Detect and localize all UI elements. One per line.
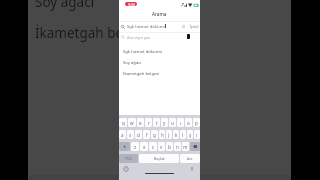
button[interactable]: d xyxy=(135,130,142,139)
button[interactable]: j xyxy=(166,130,172,139)
staticText: k xyxy=(175,132,178,138)
staticText: s xyxy=(129,132,132,138)
staticText: ı xyxy=(180,120,182,126)
staticText: ş xyxy=(189,132,192,138)
staticText: x xyxy=(143,144,146,150)
staticText: e xyxy=(139,120,142,126)
staticText: Ara xyxy=(187,156,193,161)
staticText: t xyxy=(156,120,158,126)
button[interactable]: Clear search xyxy=(182,25,185,28)
staticText: a xyxy=(121,132,124,138)
staticText: u xyxy=(171,120,174,126)
button[interactable]: p xyxy=(193,118,200,127)
staticText: c xyxy=(152,144,155,150)
staticText: d xyxy=(137,132,140,138)
staticText: Arama xyxy=(152,11,167,17)
button[interactable]: Backspace xyxy=(190,142,200,151)
staticText: l xyxy=(182,132,184,138)
button[interactable]: z xyxy=(131,142,139,151)
staticText: z xyxy=(134,144,137,150)
button[interactable]: n xyxy=(174,142,181,151)
staticText: p xyxy=(195,120,198,126)
staticText: n xyxy=(176,144,179,150)
button[interactable]: ı xyxy=(177,118,184,127)
staticText: İkametgah belgesi xyxy=(35,24,153,42)
button[interactable]: ?123 xyxy=(119,154,138,163)
button[interactable]: i xyxy=(194,130,200,139)
staticText: Boşluk xyxy=(154,156,165,161)
button[interactable]: İkametgah belgesi xyxy=(119,68,200,79)
button[interactable]: Soy ağacı xyxy=(119,57,200,68)
button[interactable]: Sgk hizmet dökümü xyxy=(119,22,200,31)
staticText: i xyxy=(196,132,198,138)
staticText: w xyxy=(130,120,134,126)
staticText: Sgk hizmet dökümü xyxy=(127,24,167,30)
button[interactable]: İptal xyxy=(190,24,199,29)
button[interactable]: l xyxy=(180,130,186,139)
button[interactable]: h xyxy=(159,130,165,139)
staticText: Ara veya yaz xyxy=(127,35,151,40)
staticText: Soy ağacı xyxy=(123,60,142,66)
staticText: b xyxy=(168,144,171,150)
button[interactable]: f xyxy=(143,130,150,139)
staticText: y xyxy=(163,120,166,126)
button[interactable]: r xyxy=(145,118,152,127)
button[interactable]: m xyxy=(182,142,189,151)
staticText: 9:04 xyxy=(128,2,135,6)
staticText: j xyxy=(168,132,170,138)
button[interactable]: a xyxy=(119,130,126,139)
staticText: ?123 xyxy=(125,157,132,161)
staticText: q xyxy=(122,120,125,126)
button[interactable]: k xyxy=(173,130,179,139)
staticText: v xyxy=(160,144,163,150)
staticText: İkametgah belgesi xyxy=(123,71,160,77)
staticText: f xyxy=(146,132,148,138)
button[interactable]: Ara xyxy=(180,154,200,163)
button[interactable]: e xyxy=(137,118,144,127)
button[interactable]: c xyxy=(149,142,157,151)
button[interactable]: Emoji xyxy=(123,166,129,172)
staticText: Soy ağacı xyxy=(35,0,95,11)
staticText: r xyxy=(148,120,150,126)
button[interactable]: x xyxy=(140,142,148,151)
button[interactable]: Sgk hizmet dökümü xyxy=(119,46,200,57)
button[interactable]: Ara veya yaz xyxy=(119,32,200,42)
button[interactable]: t xyxy=(153,118,160,127)
staticText: o xyxy=(187,120,190,126)
button[interactable]: s xyxy=(127,130,134,139)
button[interactable]: ş xyxy=(187,130,193,139)
button[interactable]: Shift xyxy=(119,142,130,151)
button[interactable]: w xyxy=(128,118,136,127)
staticText: m xyxy=(183,144,188,150)
button[interactable]: v xyxy=(158,142,165,151)
button[interactable]: b xyxy=(166,142,173,151)
button[interactable]: g xyxy=(151,130,158,139)
button[interactable]: Voice input xyxy=(189,166,195,172)
button[interactable]: y xyxy=(161,118,168,127)
staticText: Sgk hizmet dökümü xyxy=(123,49,163,55)
button[interactable]: o xyxy=(185,118,192,127)
button[interactable]: u xyxy=(169,118,176,127)
button[interactable]: Boşluk xyxy=(139,154,179,163)
button[interactable]: q xyxy=(119,118,127,127)
staticText: h xyxy=(161,132,164,138)
staticText: g xyxy=(153,132,156,138)
